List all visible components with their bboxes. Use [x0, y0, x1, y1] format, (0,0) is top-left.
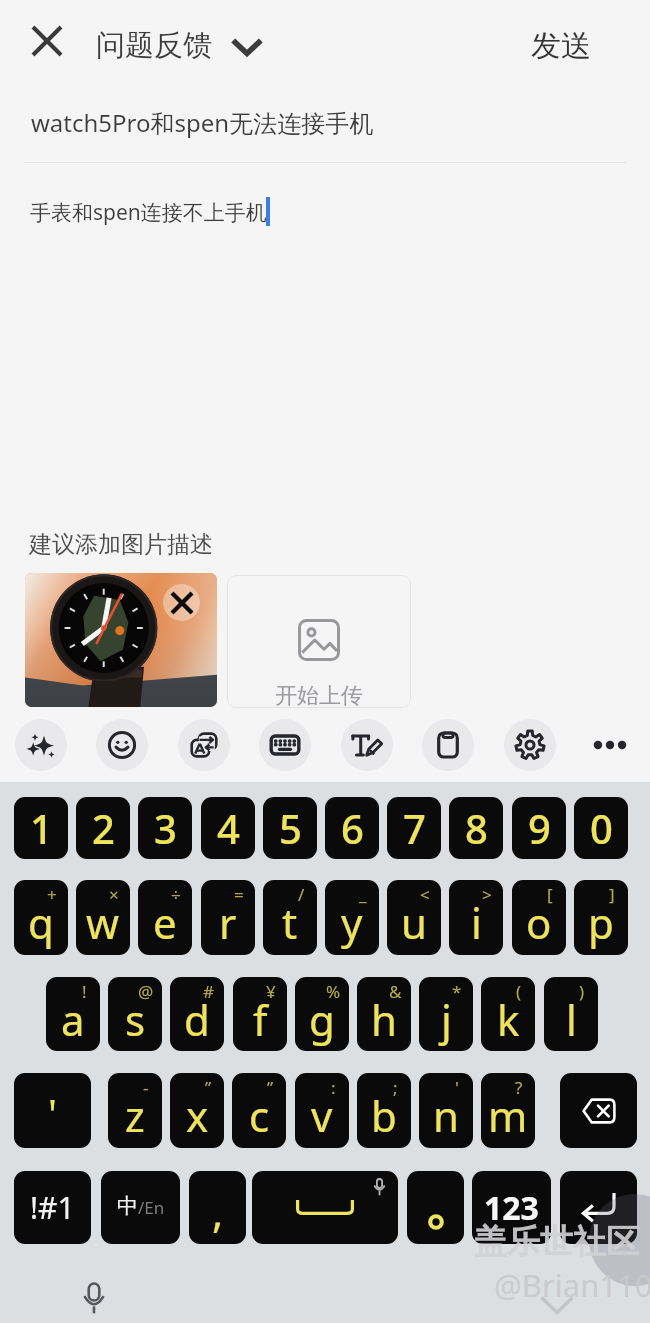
button[interactable]: Emoji — [96, 719, 148, 771]
button[interactable]: 6 — [325, 797, 379, 859]
staticText: 2 — [92, 801, 115, 855]
staticText: + — [47, 883, 57, 906]
button[interactable]: q — [14, 880, 68, 955]
button[interactable]: p — [574, 880, 628, 955]
button[interactable]: Settings — [504, 719, 556, 771]
staticText: % — [326, 980, 341, 1003]
button[interactable]: 9 — [512, 797, 566, 859]
button[interactable]: d — [170, 977, 224, 1051]
staticText: 建议添加图片描述 — [29, 530, 213, 559]
staticText: w — [86, 894, 120, 951]
button[interactable]: c — [232, 1073, 286, 1148]
staticText: watch5Pro和spen无法连接手机 — [31, 106, 374, 139]
button[interactable]: v — [295, 1073, 349, 1148]
button[interactable]: key — [252, 1171, 398, 1244]
button[interactable]: y — [325, 880, 379, 955]
button[interactable]: key — [560, 1171, 637, 1244]
staticText: # — [203, 980, 214, 1003]
button[interactable]: s — [108, 977, 162, 1051]
staticText: [ — [547, 883, 553, 906]
button[interactable]: 0 — [574, 797, 628, 859]
button[interactable]: Handwriting — [341, 719, 393, 771]
button[interactable]: a — [46, 977, 100, 1051]
staticText: × — [109, 883, 119, 906]
button[interactable]: f — [233, 977, 287, 1051]
button[interactable]: m — [481, 1073, 535, 1148]
button[interactable]: key — [101, 1171, 180, 1244]
button[interactable]: 开始上传 — [227, 575, 411, 708]
staticText: m — [488, 1087, 528, 1144]
button[interactable]: 8 — [449, 797, 503, 859]
staticText: < — [420, 883, 430, 906]
staticText: _ — [359, 883, 367, 906]
staticText: ! — [82, 980, 87, 1003]
button[interactable]: Remove photo — [163, 584, 200, 621]
button[interactable]: 5 — [263, 797, 317, 859]
button[interactable]: h — [357, 977, 411, 1051]
button[interactable]: ' — [14, 1073, 91, 1148]
button[interactable]: 7 — [387, 797, 441, 859]
button[interactable]: 3 — [138, 797, 192, 859]
button[interactable]: k — [481, 977, 535, 1051]
button[interactable]: Attached photo — [25, 573, 217, 707]
button[interactable]: 2 — [76, 797, 130, 859]
button[interactable]: !#1 — [14, 1171, 91, 1244]
button[interactable]: o — [512, 880, 566, 955]
staticText: : — [331, 1076, 336, 1099]
staticText: 1 — [30, 801, 53, 855]
staticText: v — [311, 1087, 333, 1144]
staticText: j — [441, 991, 452, 1048]
staticText: > — [482, 883, 492, 906]
button[interactable]: , — [189, 1171, 246, 1244]
staticText: 手表和spen连接不上手机 — [30, 198, 267, 227]
staticText: b — [371, 1087, 397, 1144]
staticText: / — [298, 883, 305, 906]
button[interactable]: Keyboard — [259, 719, 311, 771]
button[interactable]: e — [138, 880, 192, 955]
staticText: c — [249, 1087, 270, 1144]
staticText: 盖乐世社区 — [474, 1221, 639, 1263]
button[interactable]: t — [263, 880, 317, 955]
staticText: 5 — [279, 801, 302, 855]
staticText: g — [309, 991, 335, 1048]
staticText: /En — [138, 1196, 165, 1219]
button[interactable]: 1 — [14, 797, 68, 859]
button[interactable]: z — [108, 1073, 162, 1148]
staticText: y — [341, 894, 363, 951]
button[interactable]: n — [419, 1073, 473, 1148]
button[interactable]: key — [560, 1073, 637, 1148]
staticText: ) — [579, 980, 585, 1003]
button[interactable]: Close — [21, 15, 73, 67]
button[interactable]: Clipboard — [422, 719, 474, 771]
button[interactable]: x — [170, 1073, 224, 1148]
button[interactable]: AI assist — [15, 719, 67, 771]
button[interactable]: Translate — [178, 719, 230, 771]
button[interactable]: More options — [584, 719, 636, 771]
button[interactable]: b — [357, 1073, 411, 1148]
staticText: @Brian110 — [494, 1264, 650, 1306]
staticText: s — [125, 991, 146, 1048]
button[interactable]: key — [407, 1171, 464, 1244]
button[interactable]: i — [449, 880, 503, 955]
staticText: d — [184, 991, 210, 1048]
staticText: 8 — [465, 801, 488, 855]
button[interactable]: 问题反馈 — [96, 27, 262, 64]
staticText: & — [389, 980, 402, 1003]
button[interactable]: w — [76, 880, 130, 955]
staticText: n — [433, 1087, 459, 1144]
button[interactable]: Voice input — [70, 1274, 118, 1322]
button[interactable]: l — [544, 977, 598, 1051]
staticText: - — [143, 1076, 149, 1099]
staticText: 发送 — [531, 27, 591, 65]
button[interactable]: r — [201, 880, 255, 955]
button[interactable]: 4 — [201, 797, 255, 859]
button[interactable]: 123 — [472, 1171, 551, 1244]
button[interactable]: u — [387, 880, 441, 955]
button[interactable]: j — [419, 977, 473, 1051]
button[interactable]: g — [295, 977, 349, 1051]
button[interactable]: 发送 — [531, 27, 591, 65]
staticText: ” — [205, 1076, 212, 1099]
staticText: i — [471, 894, 482, 951]
staticText: 9 — [528, 801, 551, 855]
staticText: ÷ — [171, 883, 181, 906]
